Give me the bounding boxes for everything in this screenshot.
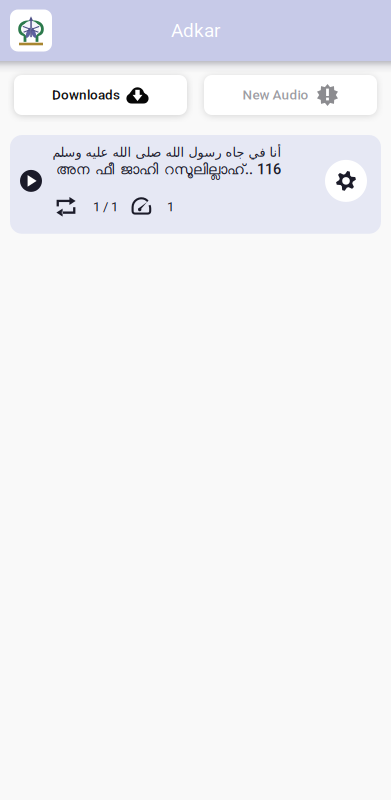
staticText: Downloads	[52, 87, 120, 103]
button[interactable]: أنا في جاه رسول الله صلى الله عليه وسلم	[10, 135, 381, 234]
button[interactable]: Downloads	[14, 75, 187, 115]
staticText: New Audio	[242, 87, 308, 103]
button[interactable]: App home	[10, 9, 52, 51]
button[interactable]: New Audio	[204, 75, 377, 115]
staticText: 1 / 1	[93, 199, 118, 214]
staticText: Adkar	[171, 19, 220, 42]
staticText: أنا في جاه رسول الله صلى الله عليه وسلم	[52, 145, 281, 160]
staticText: 1	[167, 199, 174, 214]
staticText: അന ഫീ ജാഹി റസൂലില്ലാഹ്.. 116	[56, 161, 281, 178]
